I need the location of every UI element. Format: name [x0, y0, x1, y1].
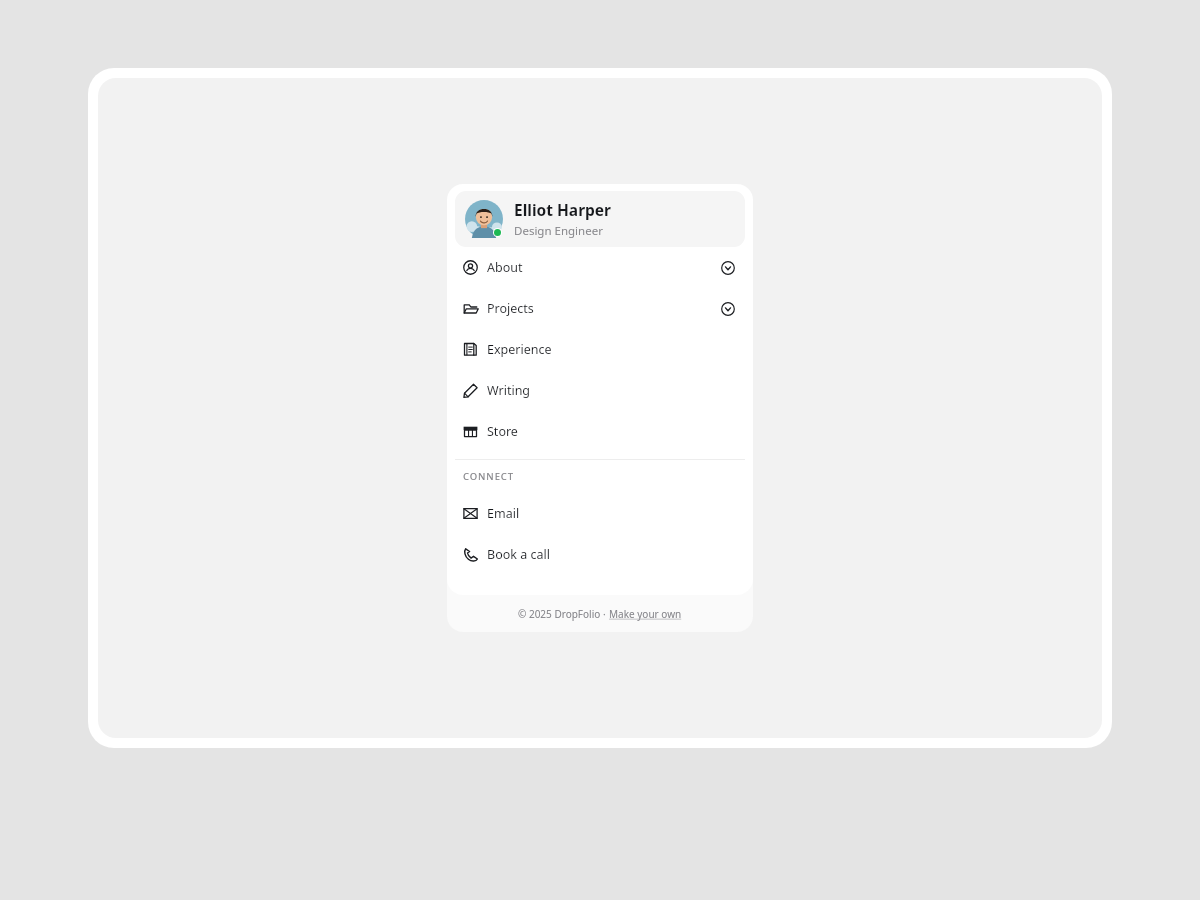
- staticText: Elliot Harper: [514, 199, 612, 220]
- button[interactable]: About: [455, 247, 745, 288]
- other: Expand: [721, 261, 735, 275]
- other: Email: [463, 506, 478, 521]
- button[interactable]: Elliot Harper: [455, 191, 745, 247]
- staticText: Projects: [487, 300, 534, 317]
- button[interactable]: Make your own: [609, 607, 682, 621]
- staticText: Email: [487, 505, 520, 522]
- staticText: Design Engineer: [514, 223, 603, 239]
- button[interactable]: Store: [455, 411, 745, 452]
- staticText: Make your own: [609, 607, 682, 621]
- button[interactable]: Writing: [455, 370, 745, 411]
- button[interactable]: Book a call: [455, 534, 745, 575]
- other: Store: [463, 424, 478, 439]
- other: Expand: [721, 302, 735, 316]
- other: About: [463, 260, 478, 275]
- staticText: © 2025 DropFolio ·: [518, 607, 609, 621]
- other: Experience: [463, 342, 478, 357]
- staticText: Writing: [487, 382, 531, 399]
- staticText: Experience: [487, 341, 552, 358]
- staticText: Book a call: [487, 546, 550, 563]
- other: Book a call: [463, 547, 478, 562]
- staticText: About: [487, 259, 523, 276]
- other: Projects: [463, 301, 478, 316]
- staticText: CONNECT: [463, 470, 514, 483]
- staticText: Store: [487, 423, 518, 440]
- button[interactable]: Projects: [455, 288, 745, 329]
- other: Writing: [463, 383, 478, 398]
- button[interactable]: Experience: [455, 329, 745, 370]
- button[interactable]: Email: [455, 493, 745, 534]
